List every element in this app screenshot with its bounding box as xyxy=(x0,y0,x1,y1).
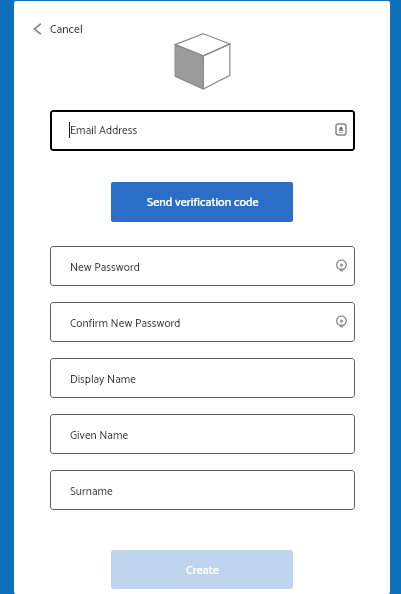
button[interactable]: Surname xyxy=(50,470,355,510)
button[interactable]: Send verification code xyxy=(111,182,293,222)
other: Suggest email address xyxy=(336,124,346,135)
button[interactable]: Create xyxy=(111,550,293,589)
staticText: Send verification code xyxy=(147,193,259,213)
button[interactable]: Confirm New Password xyxy=(50,302,355,342)
button[interactable]: Given Name xyxy=(50,414,355,454)
staticText: Email Address xyxy=(70,122,138,141)
staticText: Create xyxy=(186,561,219,581)
other: Show password xyxy=(336,316,347,327)
button[interactable]: Cancel xyxy=(31,16,84,41)
button[interactable]: New Password xyxy=(50,246,355,286)
staticText: New Password xyxy=(70,259,140,278)
staticText: Given Name xyxy=(70,427,129,446)
other: Show password xyxy=(336,260,347,271)
staticText: Display Name xyxy=(70,371,136,390)
staticText: Surname xyxy=(70,483,113,502)
staticText: Cancel xyxy=(50,20,83,39)
button[interactable]: Email Address xyxy=(50,110,355,151)
staticText: Confirm New Password xyxy=(70,315,181,334)
button[interactable]: Display Name xyxy=(50,358,355,398)
